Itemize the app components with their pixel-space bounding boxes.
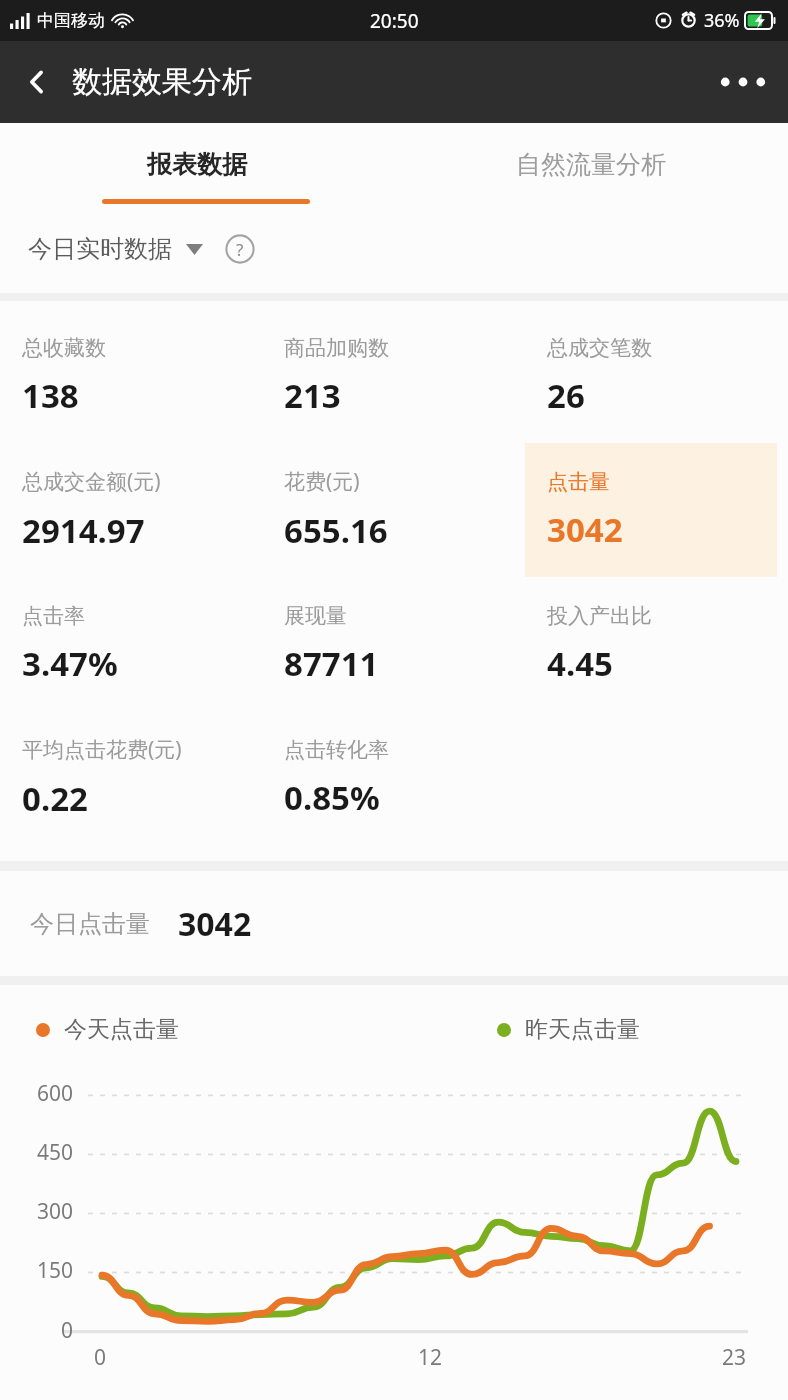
- staticText: 点击量: [547, 469, 610, 495]
- staticText: 0.85%: [284, 775, 380, 820]
- staticText: 300: [37, 1197, 74, 1226]
- staticText: 今日实时数据: [28, 234, 172, 264]
- staticText: 今天点击量: [64, 1015, 179, 1044]
- staticText: ?: [236, 238, 244, 261]
- staticText: 商品加购数: [284, 335, 389, 361]
- staticText: 投入产出比: [547, 603, 652, 629]
- staticText: 数据效果分析: [72, 63, 252, 101]
- button[interactable]: Back: [10, 55, 64, 109]
- staticText: 3042: [547, 507, 623, 552]
- staticText: 600: [37, 1079, 74, 1108]
- staticText: 2914.97: [22, 508, 145, 553]
- staticText: 点击率: [22, 603, 85, 629]
- staticText: 3.47%: [22, 641, 118, 686]
- staticText: 655.16: [284, 508, 388, 553]
- staticText: 150: [37, 1256, 74, 1285]
- button[interactable]: Help: [221, 230, 259, 268]
- staticText: 点击转化率: [284, 737, 389, 763]
- staticText: 昨天点击量: [525, 1015, 640, 1044]
- button[interactable]: 报表数据: [0, 123, 394, 205]
- staticText: 今日点击量: [30, 909, 150, 939]
- button[interactable]: 花费(元): [262, 443, 525, 577]
- staticText: 20:50: [370, 8, 419, 34]
- staticText: 0: [94, 1343, 107, 1372]
- staticText: 总收藏数: [22, 335, 106, 361]
- staticText: 23: [722, 1343, 747, 1372]
- button[interactable]: 自然流量分析: [394, 123, 788, 205]
- button[interactable]: 展现量: [262, 577, 525, 711]
- staticText: 26: [547, 373, 585, 418]
- staticText: 0.22: [22, 776, 88, 821]
- staticText: 展现量: [284, 603, 347, 629]
- button[interactable]: 总成交笔数: [525, 309, 788, 443]
- staticText: 报表数据: [147, 149, 247, 180]
- staticText: 自然流量分析: [516, 149, 666, 180]
- staticText: 450: [37, 1138, 74, 1167]
- staticText: 总成交笔数: [547, 335, 652, 361]
- staticText: 138: [22, 373, 79, 418]
- staticText: 中国移动: [37, 10, 105, 31]
- button[interactable]: 总成交金额(元): [0, 443, 262, 577]
- staticText: 36%: [704, 8, 740, 33]
- staticText: 平均点击花费(元): [22, 735, 182, 764]
- button[interactable]: 投入产出比: [525, 577, 788, 711]
- button[interactable]: 点击量: [525, 443, 777, 577]
- staticText: 12: [418, 1343, 443, 1372]
- staticText: 总成交金额(元): [22, 467, 161, 496]
- button[interactable]: 点击率: [0, 577, 262, 711]
- staticText: 4.45: [547, 641, 613, 686]
- button[interactable]: 总收藏数: [0, 309, 262, 443]
- button[interactable]: 商品加购数: [262, 309, 525, 443]
- button[interactable]: 今日实时数据: [26, 228, 205, 270]
- button[interactable]: 平均点击花费(元): [0, 711, 262, 845]
- button[interactable]: 点击转化率: [262, 711, 525, 845]
- staticText: 213: [284, 373, 341, 418]
- staticText: 花费(元): [284, 467, 360, 496]
- staticText: 87711: [284, 641, 379, 686]
- button[interactable]: More options: [712, 57, 774, 107]
- staticText: 0: [61, 1316, 74, 1345]
- staticText: 3042: [178, 902, 252, 946]
